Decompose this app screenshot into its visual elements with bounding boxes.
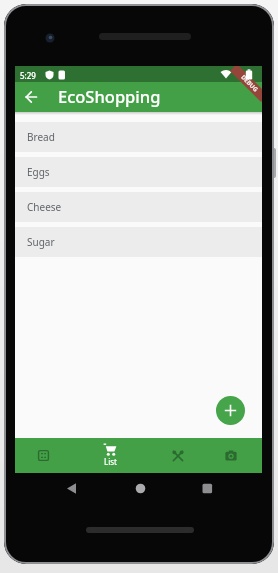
staticText: Cheese bbox=[27, 200, 62, 214]
staticText: EcoShopping bbox=[58, 85, 161, 107]
button[interactable] bbox=[151, 438, 205, 473]
button[interactable] bbox=[16, 438, 70, 473]
staticText: 5:29 bbox=[20, 70, 36, 81]
staticText: Bread bbox=[27, 130, 55, 144]
button[interactable]: Bread bbox=[15, 122, 262, 152]
button[interactable] bbox=[24, 90, 38, 104]
button[interactable]: Sugar bbox=[15, 227, 262, 257]
staticText: List bbox=[104, 456, 117, 467]
button[interactable]: List bbox=[83, 438, 137, 473]
staticText: Sugar bbox=[27, 235, 55, 249]
button[interactable]: Eggs bbox=[15, 157, 262, 187]
button[interactable] bbox=[204, 438, 258, 473]
button[interactable]: Cheese bbox=[15, 192, 262, 222]
staticText: DEBUG bbox=[239, 73, 260, 94]
button[interactable] bbox=[216, 396, 245, 425]
staticText: Eggs bbox=[27, 165, 50, 179]
